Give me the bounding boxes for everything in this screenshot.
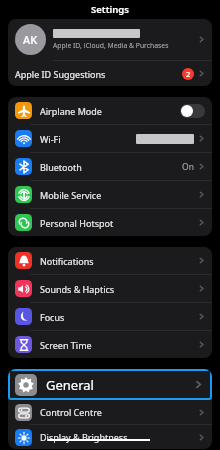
- button[interactable]: Sounds & Haptics: [8, 275, 212, 303]
- button[interactable]: Mobile Service: [8, 181, 212, 209]
- staticText: Bluetooth: [40, 161, 182, 173]
- button[interactable]: Wi-Fi: [8, 125, 212, 153]
- button[interactable]: Airplane Mode: [8, 97, 212, 125]
- staticText: Airplane Mode: [40, 105, 180, 117]
- button[interactable]: Control Centre: [8, 400, 212, 425]
- staticText: Notifications: [40, 255, 194, 267]
- staticText: Apple ID, iCloud, Media & Purchases: [53, 41, 169, 50]
- button[interactable]: Apple ID Suggestions: [8, 61, 212, 86]
- other: Airplane Mode: [180, 104, 205, 118]
- button[interactable]: Focus: [8, 303, 212, 331]
- staticText: Wi-Fi: [40, 133, 136, 145]
- staticText: Settings: [91, 3, 129, 16]
- staticText: 2: [186, 69, 191, 79]
- staticText: Personal Hotspot: [40, 217, 194, 229]
- button[interactable]: Notifications: [8, 247, 212, 275]
- staticText: General: [46, 376, 194, 394]
- staticText: Apple ID Suggestions: [15, 68, 182, 80]
- staticText: On: [182, 161, 194, 173]
- button[interactable]: General: [8, 369, 212, 400]
- button[interactable]: Screen Time: [8, 331, 212, 358]
- staticText: Sounds & Haptics: [40, 283, 194, 295]
- button[interactable]: Bluetooth: [8, 153, 212, 181]
- button[interactable]: AK: [8, 19, 212, 61]
- staticText: AK: [23, 32, 38, 47]
- staticText: Focus: [40, 311, 194, 323]
- button[interactable]: Display & Brightness: [8, 425, 212, 449]
- staticText: Display & Brightness: [40, 431, 198, 443]
- staticText: Screen Time: [40, 339, 194, 351]
- staticText: Control Centre: [40, 406, 194, 418]
- button[interactable]: Personal Hotspot: [8, 209, 212, 236]
- staticText: Mobile Service: [40, 189, 194, 201]
